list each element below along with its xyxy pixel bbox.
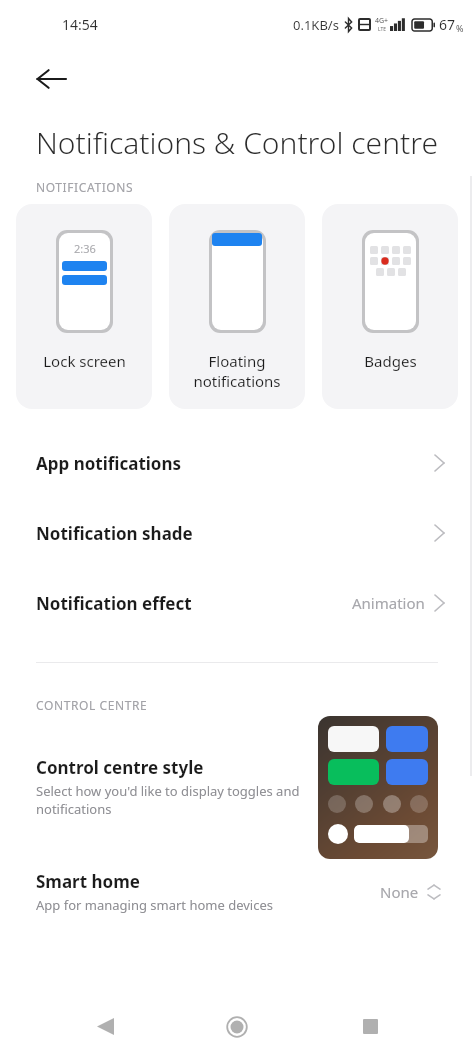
staticText: 4G+ [375,16,389,26]
staticText: CONTROL CENTRE [36,697,148,713]
staticText: 0.1KB/s [293,16,339,34]
button[interactable]: Notification effect [0,568,474,638]
staticText: App notifications [36,452,435,475]
staticText: Smart home [36,870,140,893]
button[interactable]: Smart home [0,861,474,923]
staticText: Control centre style [36,756,204,779]
staticText: 2:36 [74,241,96,256]
staticText: Notification shade [36,522,435,545]
button[interactable]: 2:36 [16,204,152,409]
staticText: 14:54 [62,15,98,34]
button[interactable]: Back [77,1000,133,1053]
staticText: Notification effect [36,592,352,615]
staticText: LTE [378,26,387,33]
button[interactable]: Home [209,1000,265,1053]
staticText: Select how you'd like to display toggles… [36,782,304,818]
staticText: Badges [364,351,417,371]
staticText: % [456,22,464,34]
button[interactable]: Back [24,52,78,106]
staticText: 67 [439,15,456,34]
button[interactable]: Control centre style [0,713,474,861]
staticText: Animation [352,593,425,613]
button[interactable]: Floating notifications [169,204,305,409]
button[interactable]: App notifications [0,428,474,498]
staticText: Lock screen [43,351,126,371]
staticText: Floating notifications [193,351,281,391]
staticText: NOTIFICATIONS [36,179,134,195]
staticText: App for managing smart home devices [36,896,274,914]
staticText: Notifications & Control centre [36,122,438,163]
button[interactable]: Notification shade [0,498,474,568]
staticText: None [380,882,419,902]
button[interactable]: Recents [342,1000,398,1053]
button[interactable]: Badges [322,204,458,409]
